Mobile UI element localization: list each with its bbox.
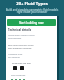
staticText: Start building now bbox=[19, 21, 44, 25]
staticText: Technical details bbox=[8, 28, 32, 32]
staticText: Stay connected bbox=[11, 74, 26, 77]
staticText: Model every stage of your fluid pipeline bbox=[8, 34, 35, 40]
staticText: Real-time viscosity solver with adaptive… bbox=[8, 44, 34, 50]
staticText: Build and simulate parametric fluid mode… bbox=[3, 8, 61, 14]
staticText: Download the app bbox=[12, 62, 31, 65]
staticText: Available now for desktop bbox=[8, 53, 23, 59]
button[interactable]: Google Play bbox=[13, 66, 17, 70]
staticText: 20+ Fluid Types bbox=[4, 1, 60, 7]
button[interactable]: Start building now bbox=[7, 19, 56, 26]
button[interactable]: App Store bbox=[20, 66, 24, 70]
